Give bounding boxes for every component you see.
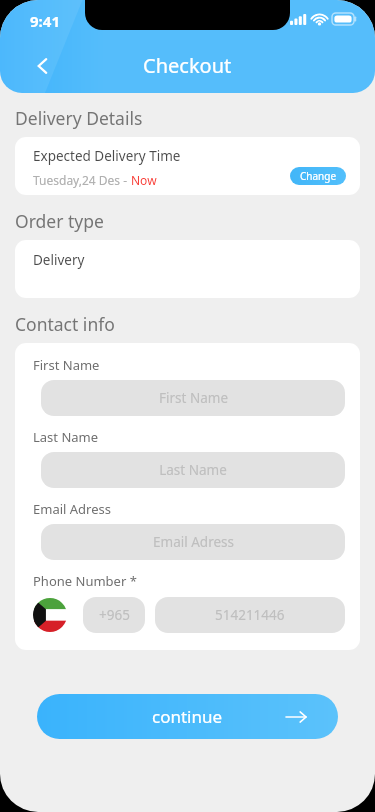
staticText: Last Name xyxy=(33,428,99,446)
staticText: Contact info xyxy=(15,312,115,336)
button[interactable]: First Name xyxy=(41,380,345,416)
staticText: +965 xyxy=(99,606,130,624)
button[interactable]: Last Name xyxy=(41,452,345,488)
button[interactable]: +965 xyxy=(83,597,145,633)
staticText: continue xyxy=(152,705,223,728)
staticText: First Name xyxy=(159,389,228,407)
button[interactable]: Email Adress xyxy=(41,524,345,560)
staticText: Delivery xyxy=(33,251,85,269)
staticText: Delivery Details xyxy=(15,106,143,130)
button[interactable]: continue xyxy=(37,694,338,739)
button[interactable]: Delivery xyxy=(15,240,360,298)
staticText: Now xyxy=(131,172,157,188)
staticText: Checkout xyxy=(143,52,232,79)
staticText: Email Adress xyxy=(33,500,111,518)
other: Kuwait country flag xyxy=(33,598,67,632)
staticText: Tuesday,24 Des - xyxy=(33,172,131,188)
staticText: 9:41 xyxy=(30,11,60,31)
staticText: Phone Number * xyxy=(33,572,137,590)
staticText: First Name xyxy=(33,356,100,374)
staticText: Email Adress xyxy=(153,533,234,551)
button[interactable]: Change xyxy=(290,167,346,185)
staticText: Change xyxy=(300,169,337,183)
staticText: Last Name xyxy=(159,461,227,479)
button[interactable]: Expected Delivery Time xyxy=(15,137,360,195)
staticText: Expected Delivery Time xyxy=(33,147,181,165)
button[interactable]: 514211446 xyxy=(155,597,345,633)
staticText: 514211446 xyxy=(215,606,285,624)
button[interactable]: Back xyxy=(26,49,60,83)
staticText: Order type xyxy=(15,209,104,233)
